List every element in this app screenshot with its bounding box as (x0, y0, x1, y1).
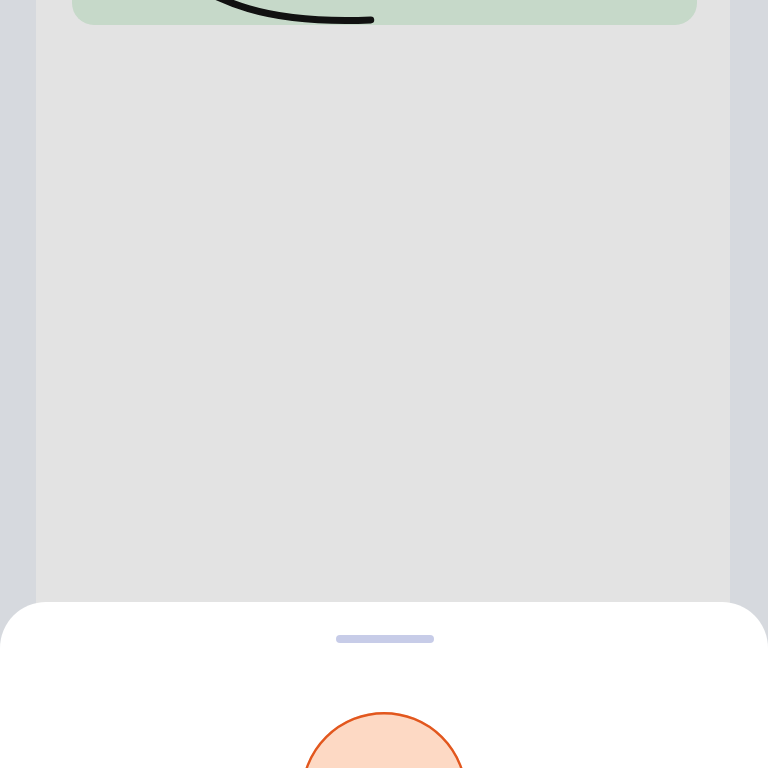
button[interactable]: Drag handle (336, 635, 434, 643)
button[interactable]: Timer dial (301, 712, 467, 768)
button[interactable] (72, 0, 697, 25)
